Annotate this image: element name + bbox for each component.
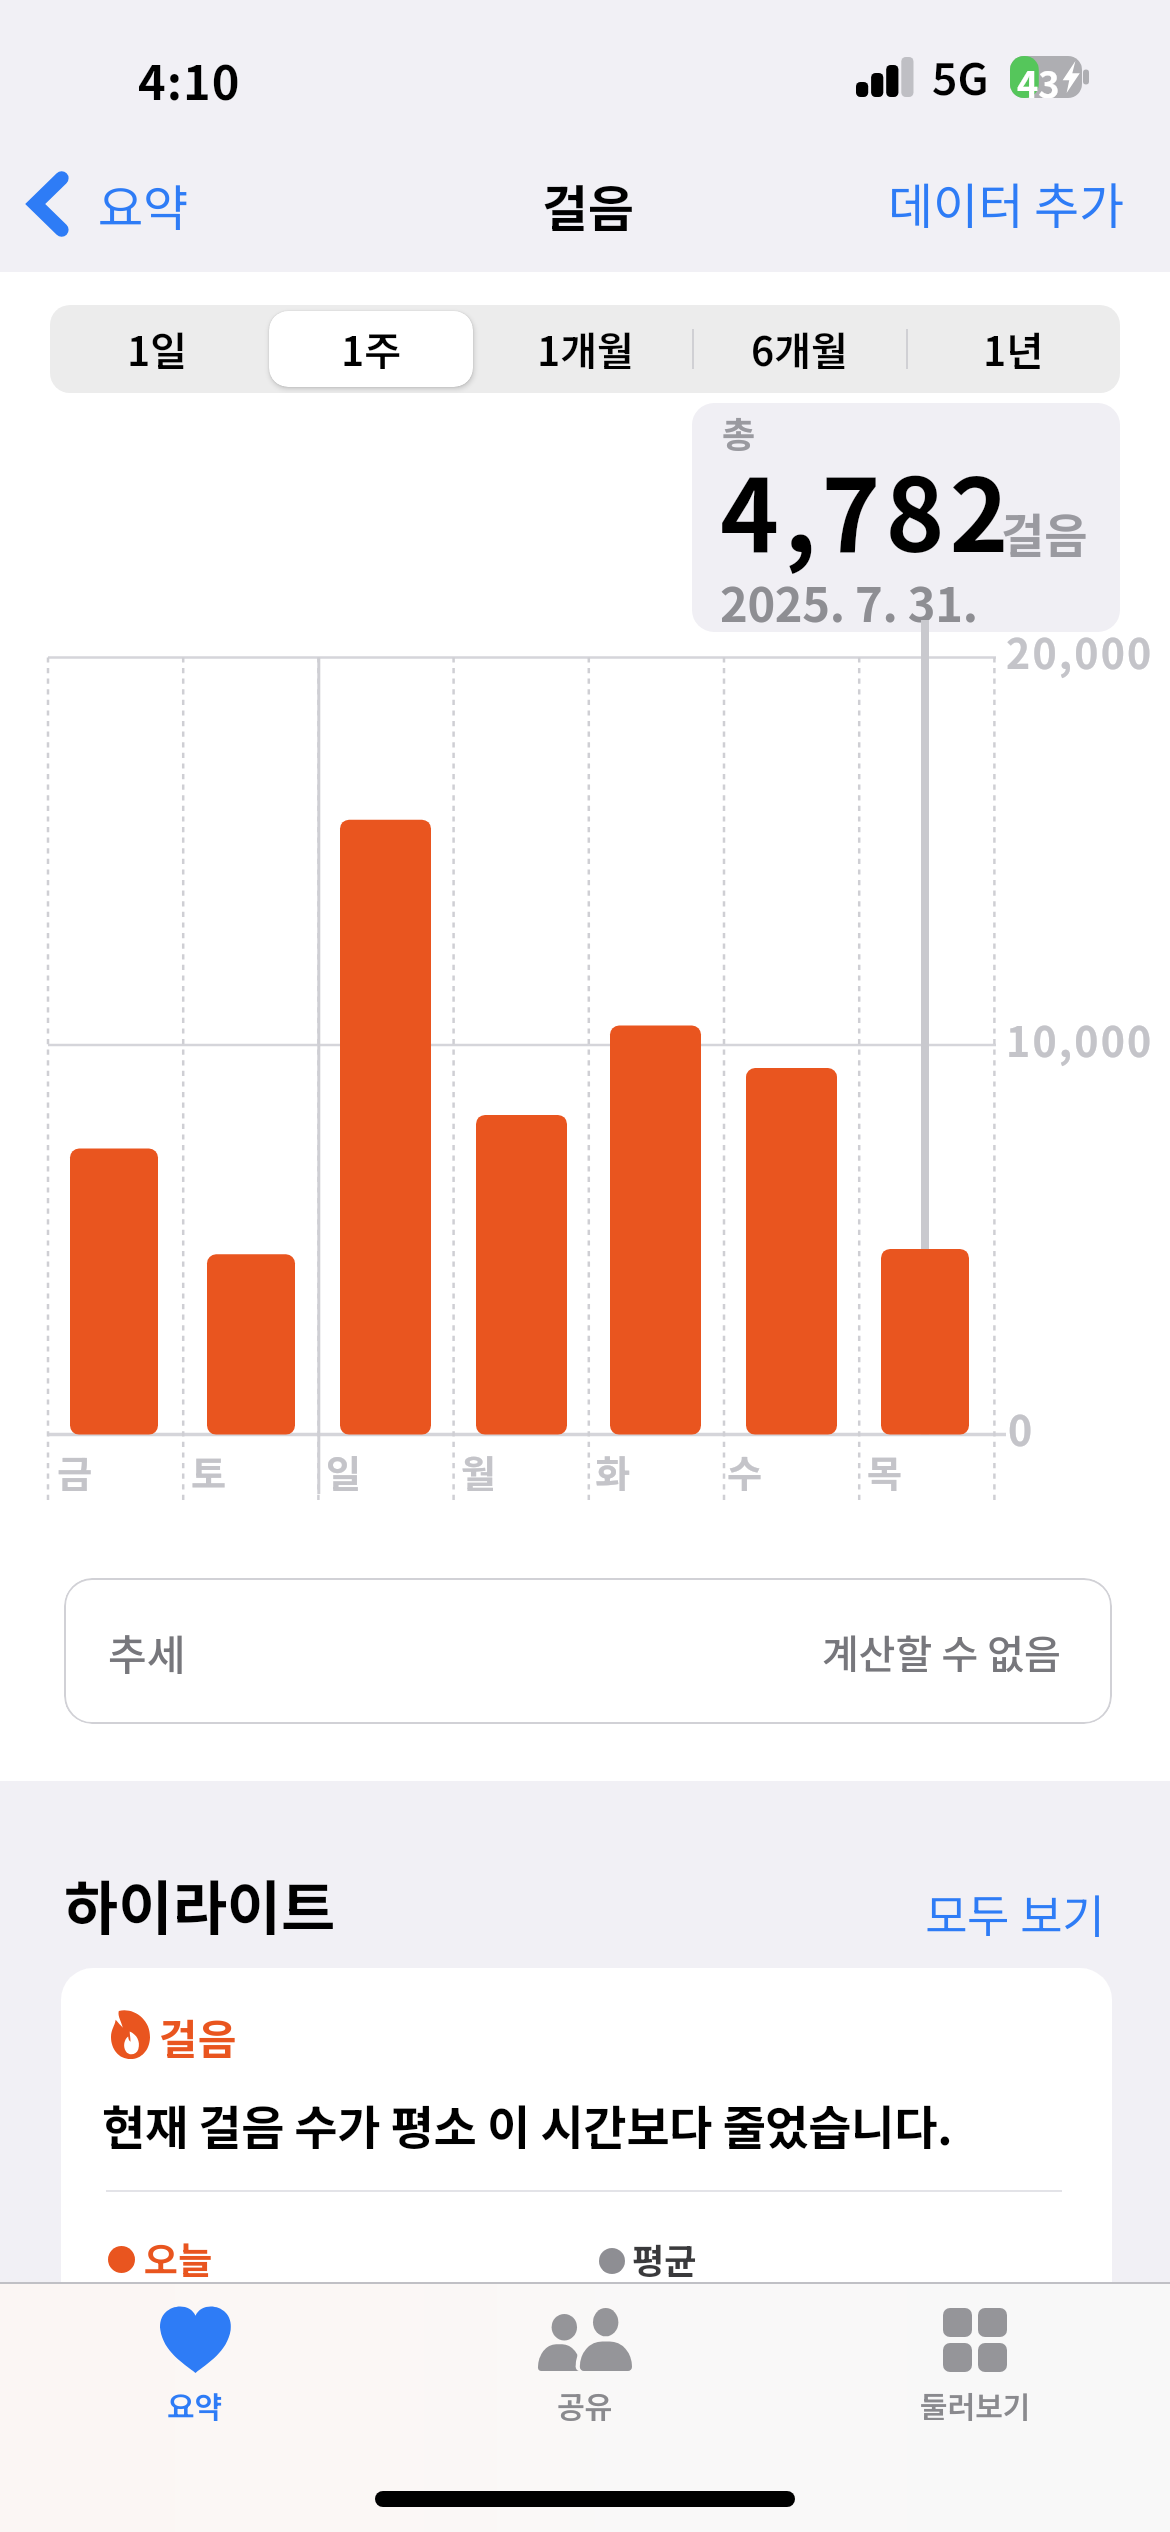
staticText: 1일 xyxy=(127,320,187,378)
staticText: 토 xyxy=(191,1444,226,1499)
staticText: 총 xyxy=(722,406,756,458)
staticText: 1주 xyxy=(341,320,401,378)
staticText: 목 xyxy=(867,1444,902,1499)
staticText: 10,000 xyxy=(1006,1009,1154,1068)
staticText: 일 xyxy=(326,1444,361,1499)
button[interactable]: 모두 보기 xyxy=(899,1875,1131,1951)
staticText: 화 xyxy=(595,1444,630,1499)
staticText: 4:10 xyxy=(138,45,241,113)
staticText: 추세 xyxy=(108,1621,186,1682)
staticText: 2025. 7. 31. xyxy=(720,567,978,635)
staticText: 모두 보기 xyxy=(925,1880,1105,1947)
button[interactable]: 데이터 추가 xyxy=(866,154,1147,250)
staticText: 요약 xyxy=(167,2383,223,2426)
staticText: 20,000 xyxy=(1006,621,1154,680)
staticText: 5G xyxy=(932,44,989,108)
button[interactable]: 1일 xyxy=(50,305,264,393)
button[interactable]: 1개월 xyxy=(478,305,692,393)
staticText: 금 xyxy=(57,1444,92,1499)
staticText: 월 xyxy=(461,1444,496,1499)
staticText: 1년 xyxy=(983,320,1043,378)
staticText: 걸음 xyxy=(542,169,634,241)
staticText: 요약 xyxy=(98,169,189,240)
button[interactable]: Sharing xyxy=(390,2282,780,2532)
staticText: 걸음 xyxy=(159,2006,237,2067)
staticText: 공유 xyxy=(557,2383,613,2426)
staticText: 평균 xyxy=(632,2233,697,2284)
staticText: 오늘 xyxy=(144,2231,213,2285)
staticText: 현재 걸음 수가 평소 이 시간보다 줄었습니다. xyxy=(102,2090,953,2158)
button[interactable]: 추세 xyxy=(64,1578,1112,1724)
button[interactable]: 1주 xyxy=(264,305,478,393)
staticText: 6개월 xyxy=(751,320,848,378)
staticText: 하이라이트 xyxy=(64,1862,336,1947)
other: Back xyxy=(22,170,66,238)
button[interactable]: Browse xyxy=(780,2282,1170,2532)
staticText: 계산할 수 없음 xyxy=(822,1623,1061,1681)
staticText: 둘러보기 xyxy=(920,2383,1031,2426)
staticText: 43 xyxy=(1017,56,1060,98)
staticText: 걸음 xyxy=(1001,498,1088,566)
button[interactable]: 1년 xyxy=(906,305,1120,393)
button[interactable]: Summary xyxy=(0,2282,390,2532)
staticText: 4,782 xyxy=(720,436,1014,581)
staticText: 데이터 추가 xyxy=(888,167,1125,238)
staticText: 수 xyxy=(727,1444,762,1499)
button[interactable]: Back xyxy=(12,156,201,252)
button[interactable]: 6개월 xyxy=(692,305,906,393)
staticText: 0 xyxy=(1008,1398,1033,1457)
button[interactable] xyxy=(61,1968,1112,2368)
staticText: 1개월 xyxy=(537,320,634,378)
